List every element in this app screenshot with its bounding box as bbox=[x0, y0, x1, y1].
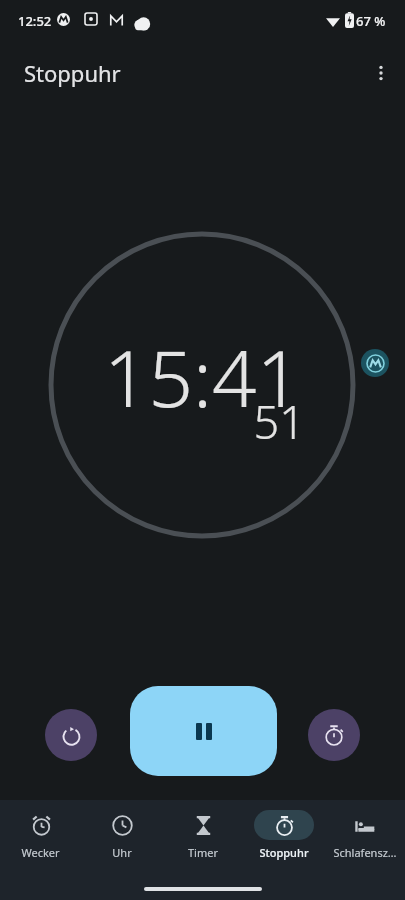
button[interactable]: Pause bbox=[130, 686, 277, 776]
staticText: Stoppuhr bbox=[259, 845, 309, 860]
staticText: Wecker bbox=[21, 845, 60, 860]
staticText: 15:41 bbox=[0, 324, 405, 430]
button[interactable]: Reset bbox=[45, 709, 97, 761]
button[interactable]: Uhr bbox=[81, 810, 162, 860]
button[interactable]: Stoppuhr bbox=[243, 810, 324, 860]
button[interactable]: Lap bbox=[308, 709, 360, 761]
staticText: 67 % bbox=[356, 12, 386, 30]
staticText: Stoppuhr bbox=[24, 58, 121, 88]
button[interactable]: Timer bbox=[162, 810, 243, 860]
button[interactable]: More options bbox=[365, 57, 397, 89]
staticText: Uhr bbox=[112, 845, 132, 860]
staticText: Schlafensz… bbox=[333, 845, 397, 860]
button[interactable]: Wecker bbox=[0, 810, 81, 860]
button[interactable]: Schlafensz… bbox=[324, 810, 405, 860]
staticText: Timer bbox=[188, 845, 218, 860]
staticText: 51 bbox=[0, 391, 305, 452]
staticText: 12:52 bbox=[18, 12, 52, 30]
button[interactable]: Motorola bbox=[361, 349, 389, 377]
